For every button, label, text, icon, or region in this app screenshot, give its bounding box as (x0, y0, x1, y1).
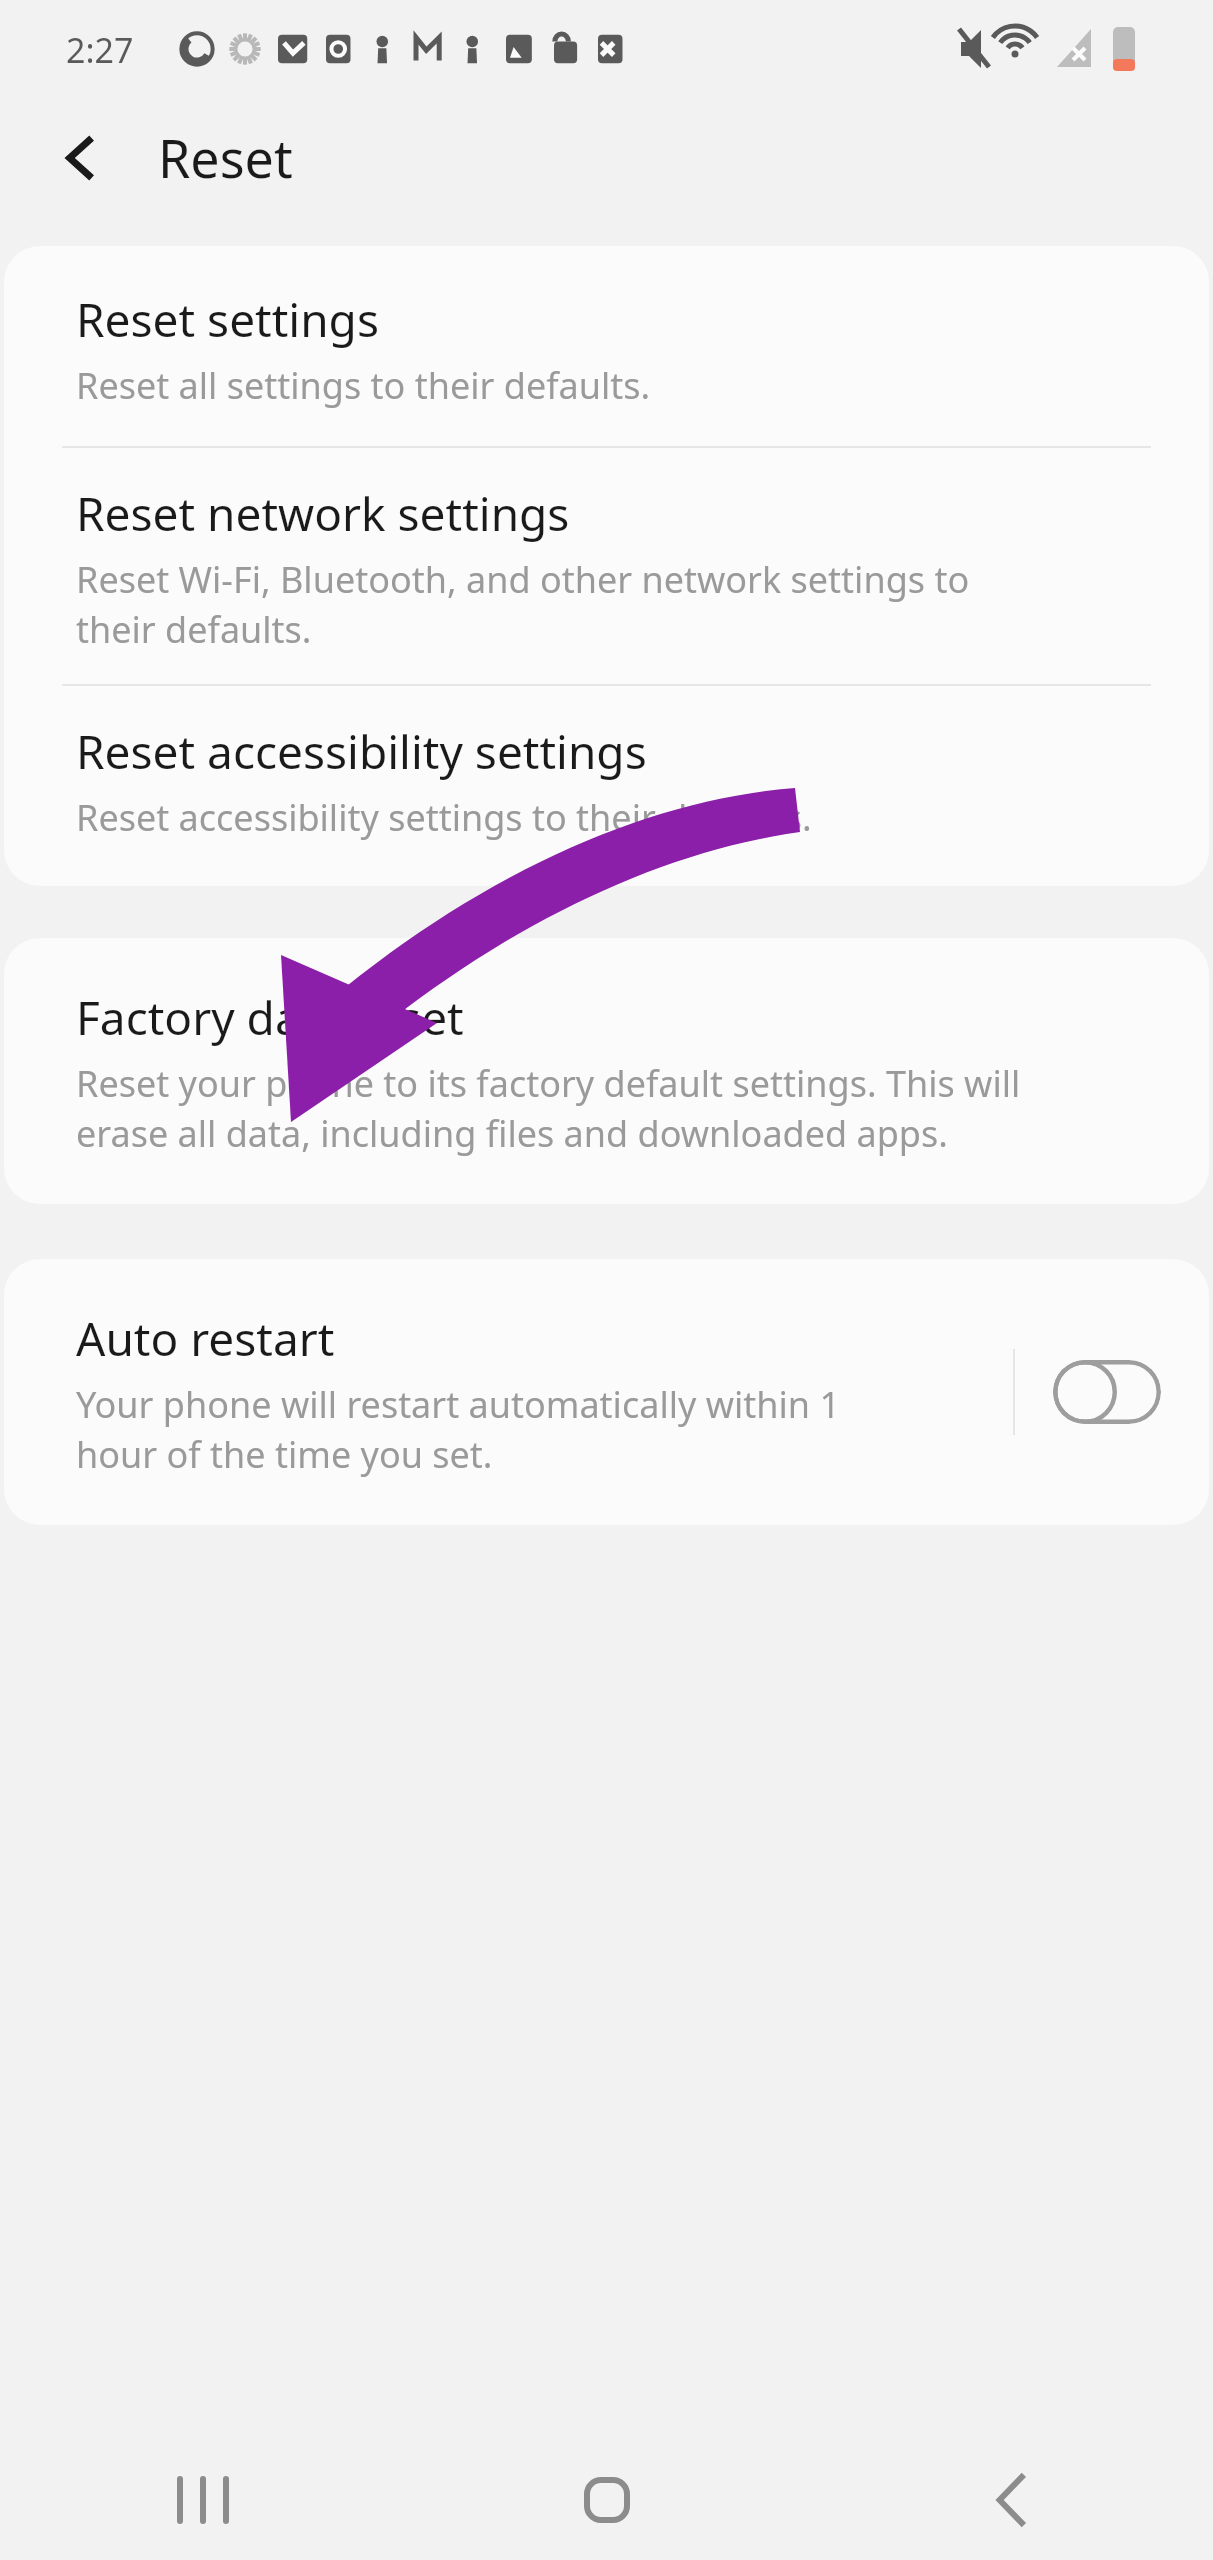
button[interactable]: Auto restart toggle, off (1053, 1360, 1161, 1424)
staticText: Reset network settings (76, 482, 570, 545)
staticText: Reset accessibility settings (76, 720, 647, 783)
button[interactable]: Back (36, 112, 128, 204)
button[interactable]: Home (405, 2440, 809, 2560)
button[interactable]: Reset accessibility settings (4, 686, 1209, 886)
staticText: Reset (158, 122, 293, 193)
staticText: Reset accessibility settings to their de… (76, 793, 812, 842)
staticText: Reset your phone to its factory default … (76, 1059, 1021, 1158)
button[interactable]: Reset network settings (4, 448, 1209, 684)
button[interactable]: Recent apps (0, 2440, 405, 2560)
staticText: Your phone will restart automatically wi… (76, 1380, 840, 1479)
staticText: Factory data reset (76, 986, 464, 1049)
staticText: 2:27 (66, 27, 134, 73)
staticText: Reset settings (76, 288, 379, 351)
staticText: Reset Wi-Fi, Bluetooth, and other networ… (76, 555, 970, 654)
staticText: Reset all settings to their defaults. (76, 361, 651, 410)
button[interactable]: Back (809, 2440, 1213, 2560)
button[interactable]: Factory data reset (4, 938, 1209, 1204)
staticText: Auto restart (76, 1307, 335, 1370)
button[interactable]: Reset settings (4, 246, 1209, 446)
button[interactable]: Auto restart (4, 1259, 1013, 1525)
